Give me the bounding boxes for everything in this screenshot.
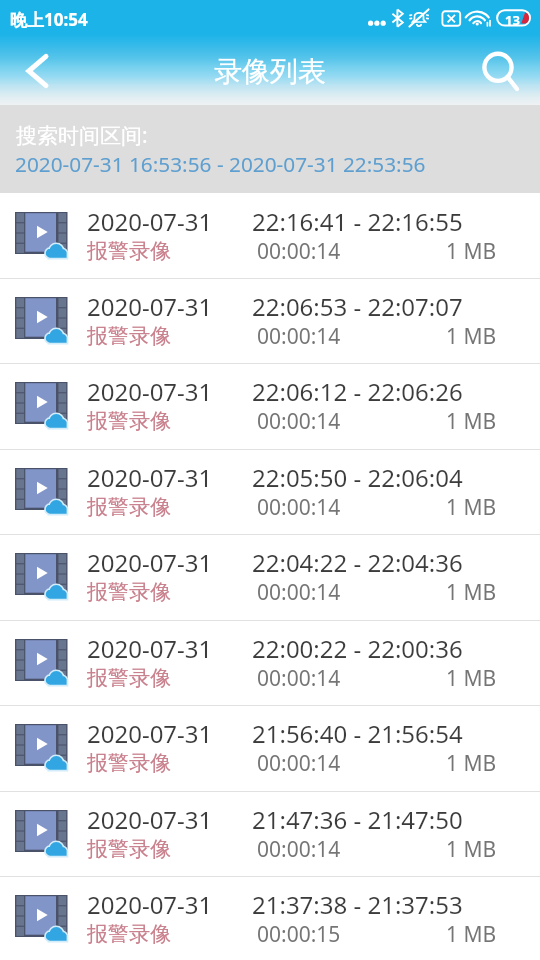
staticText: 00:00:14 xyxy=(257,749,341,778)
staticText: 22:05:50 - 22:06:04 xyxy=(252,461,463,494)
staticText: 1 MB xyxy=(446,322,497,351)
staticText: 报警录像 xyxy=(87,750,171,776)
button[interactable]: 2020-07-31 xyxy=(0,363,540,448)
staticText: 00:00:14 xyxy=(257,407,341,436)
button[interactable]: 2020-07-31 xyxy=(0,278,540,363)
staticText: 2020-07-31 xyxy=(87,461,213,494)
staticText: 1 MB xyxy=(446,493,497,522)
staticText: 13 xyxy=(505,11,520,29)
staticText: 2020-07-31 xyxy=(87,205,213,238)
staticText: 搜索时间区间: xyxy=(16,121,148,150)
button[interactable]: Back xyxy=(4,44,70,100)
staticText: 2020-07-31 xyxy=(87,375,213,408)
staticText: 1 MB xyxy=(446,920,497,949)
staticText: 00:00:14 xyxy=(257,835,341,864)
staticText: 2020-07-31 xyxy=(87,717,213,750)
staticText: 报警录像 xyxy=(87,836,171,862)
button[interactable]: 2020-07-31 xyxy=(0,620,540,705)
button[interactable]: 2020-07-31 xyxy=(0,876,540,960)
staticText: 录像列表 xyxy=(0,54,540,89)
staticText: 报警录像 xyxy=(87,323,171,349)
staticText: 21:47:36 - 21:47:50 xyxy=(252,803,463,836)
staticText: 22:06:53 - 22:07:07 xyxy=(252,290,463,323)
button[interactable]: Search xyxy=(470,44,530,100)
staticText: 00:00:14 xyxy=(257,493,341,522)
staticText: 00:00:15 xyxy=(257,920,341,949)
staticText: 报警录像 xyxy=(87,579,171,605)
staticText: 22:00:22 - 22:00:36 xyxy=(252,632,463,665)
button[interactable]: 2020-07-31 xyxy=(0,705,540,790)
staticText: 1 MB xyxy=(446,664,497,693)
staticText: 21:56:40 - 21:56:54 xyxy=(252,717,463,750)
staticText: 21:37:38 - 21:37:53 xyxy=(252,888,463,921)
button[interactable]: 2020-07-31 xyxy=(0,534,540,619)
staticText: 1 MB xyxy=(446,407,497,436)
staticText: 00:00:14 xyxy=(257,322,341,351)
staticText: 22:04:22 - 22:04:36 xyxy=(252,546,463,579)
staticText: 1 MB xyxy=(446,835,497,864)
staticText: 报警录像 xyxy=(87,494,171,520)
staticText: 2020-07-31 xyxy=(87,546,213,579)
staticText: 晚上10:54 xyxy=(10,8,88,31)
staticText: 22:06:12 - 22:06:26 xyxy=(252,375,463,408)
staticText: 2020-07-31 16:53:56 - 2020-07-31 22:53:5… xyxy=(15,150,426,178)
staticText: 1 MB xyxy=(446,237,497,266)
staticText: 2020-07-31 xyxy=(87,803,213,836)
staticText: 报警录像 xyxy=(87,665,171,691)
staticText: 2020-07-31 xyxy=(87,290,213,323)
staticText: 报警录像 xyxy=(87,408,171,434)
button[interactable]: 2020-07-31 xyxy=(0,193,540,278)
staticText: 00:00:14 xyxy=(257,578,341,607)
staticText: 2020-07-31 xyxy=(87,632,213,665)
staticText: 报警录像 xyxy=(87,921,171,947)
button[interactable]: 2020-07-31 xyxy=(0,791,540,876)
staticText: 报警录像 xyxy=(87,238,171,264)
staticText: 1 MB xyxy=(446,749,497,778)
staticText: 00:00:14 xyxy=(257,237,341,266)
staticText: 00:00:14 xyxy=(257,664,341,693)
button[interactable]: 2020-07-31 xyxy=(0,449,540,534)
staticText: 1 MB xyxy=(446,578,497,607)
staticText: 2020-07-31 xyxy=(87,888,213,921)
staticText: 22:16:41 - 22:16:55 xyxy=(252,205,463,238)
